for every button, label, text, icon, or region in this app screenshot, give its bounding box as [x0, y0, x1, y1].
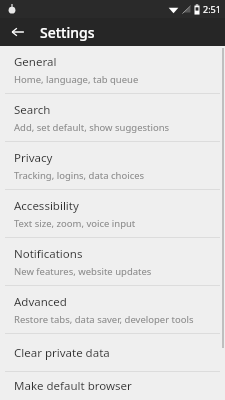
- staticText: Make default browser: [14, 378, 132, 394]
- staticText: Clear private data: [14, 345, 110, 361]
- staticText: Restore tabs, data saver, developer tool…: [14, 313, 194, 326]
- button[interactable]: Back: [6, 20, 30, 44]
- button[interactable]: General: [0, 46, 225, 93]
- staticText: Accessibility: [14, 198, 79, 214]
- staticText: Privacy: [14, 150, 53, 166]
- staticText: Tracking, logins, data choices: [14, 169, 145, 182]
- staticText: Home, language, tab queue: [14, 73, 139, 86]
- staticText: 2:51: [203, 3, 221, 15]
- button[interactable]: Clear private data: [0, 334, 225, 371]
- button[interactable]: Notifications: [0, 238, 225, 285]
- button[interactable]: Accessibility: [0, 190, 225, 237]
- staticText: New features, website updates: [14, 265, 152, 278]
- button[interactable]: Make default browser: [0, 372, 225, 400]
- staticText: Text size, zoom, voice input: [14, 217, 136, 230]
- staticText: Settings: [40, 23, 95, 42]
- button[interactable]: Advanced: [0, 286, 225, 333]
- button[interactable]: Search: [0, 94, 225, 141]
- staticText: Add, set default, show suggestions: [14, 121, 170, 134]
- button[interactable]: Privacy: [0, 142, 225, 189]
- staticText: Advanced: [14, 294, 67, 310]
- staticText: Search: [14, 102, 51, 118]
- staticText: General: [14, 54, 57, 70]
- staticText: Notifications: [14, 246, 83, 262]
